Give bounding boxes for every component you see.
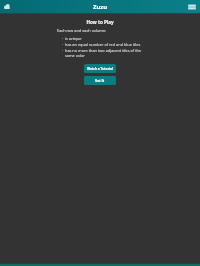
staticText: Each row and each column: xyxy=(57,28,107,33)
staticText: · xyxy=(62,42,64,47)
staticText: has no more than two adjacent tiles of t… xyxy=(65,48,143,58)
button[interactable]: Watch a Tutorial xyxy=(84,64,116,73)
staticText: · xyxy=(62,36,64,41)
button[interactable]: Menu xyxy=(188,4,196,10)
staticText: Watch a Tutorial xyxy=(87,67,113,71)
button[interactable]: Got It xyxy=(84,76,116,85)
staticText: Got It xyxy=(95,79,105,83)
staticText: How to Play xyxy=(86,19,114,25)
staticText: is unique xyxy=(65,36,82,41)
staticText: · xyxy=(62,48,64,53)
staticText: has an equal number of red and blue tile… xyxy=(65,42,141,47)
staticText: Zuzu xyxy=(93,3,108,11)
